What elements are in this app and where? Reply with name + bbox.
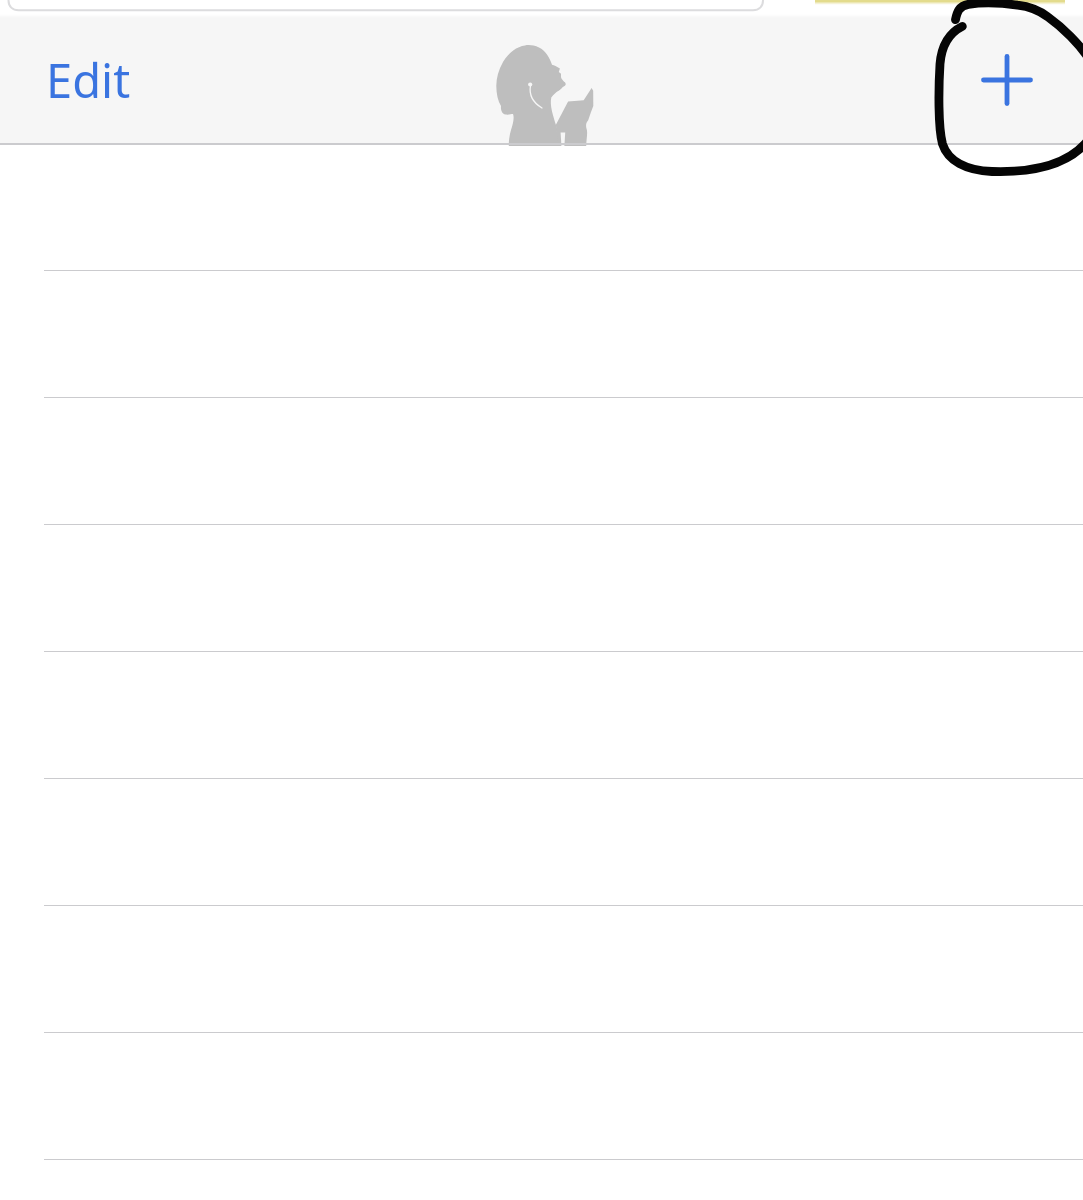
button[interactable] — [0, 652, 1083, 779]
staticText: Edit — [46, 48, 131, 112]
button[interactable]: Add — [962, 35, 1051, 124]
button[interactable]: Edit — [46, 18, 142, 142]
button[interactable] — [0, 271, 1083, 398]
button[interactable] — [0, 144, 1083, 271]
button[interactable] — [0, 1033, 1083, 1160]
button[interactable] — [0, 779, 1083, 906]
button[interactable] — [0, 525, 1083, 652]
button[interactable] — [0, 398, 1083, 525]
button[interactable] — [0, 906, 1083, 1033]
